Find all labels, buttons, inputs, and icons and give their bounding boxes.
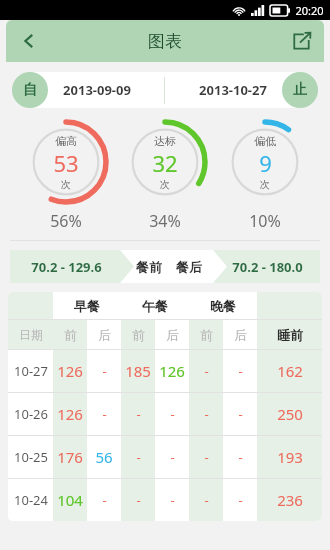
- staticText: -: [238, 448, 243, 466]
- staticText: 晚餐: [210, 298, 236, 314]
- button[interactable]: 10-25: [8, 436, 322, 478]
- staticText: 后: [166, 327, 179, 343]
- button[interactable]: 2013-10-27: [165, 72, 300, 108]
- staticText: -: [204, 405, 209, 423]
- button[interactable]: 餐前: [132, 259, 166, 275]
- staticText: 后: [98, 327, 111, 343]
- staticText: 次: [61, 178, 71, 191]
- staticText: 2013-10-27: [199, 81, 267, 99]
- staticText: 后: [234, 327, 247, 343]
- staticText: 次: [260, 178, 270, 191]
- staticText: -: [204, 362, 209, 380]
- staticText: 午餐: [142, 298, 168, 314]
- staticText: 70.2 - 129.6: [31, 258, 102, 276]
- staticText: 10-27: [14, 362, 48, 380]
- staticText: 56%: [50, 210, 82, 232]
- staticText: -: [136, 405, 141, 423]
- staticText: 126: [57, 361, 83, 381]
- staticText: 早餐: [74, 298, 100, 314]
- staticText: 达标: [154, 134, 176, 148]
- staticText: 9: [259, 148, 272, 178]
- staticText: -: [238, 362, 243, 380]
- button[interactable]: 10-24: [8, 479, 322, 521]
- staticText: 偏低: [254, 134, 276, 148]
- button[interactable]: 2013-09-09: [30, 72, 164, 108]
- staticText: 32: [152, 148, 178, 178]
- staticText: -: [204, 491, 209, 509]
- button[interactable]: Back: [6, 20, 52, 62]
- staticText: 10-26: [14, 405, 48, 423]
- staticText: -: [170, 405, 175, 423]
- staticText: 图表: [148, 31, 182, 52]
- staticText: 34%: [149, 210, 181, 232]
- staticText: -: [136, 448, 141, 466]
- button[interactable]: 餐后: [172, 259, 206, 275]
- staticText: 次: [160, 178, 170, 191]
- staticText: 睡前: [277, 327, 303, 343]
- button[interactable]: 10-26: [8, 393, 322, 435]
- staticText: 10%: [249, 210, 281, 232]
- staticText: 前: [200, 327, 213, 343]
- staticText: 104: [57, 490, 83, 510]
- staticText: 10-24: [14, 491, 48, 509]
- staticText: 250: [277, 404, 303, 424]
- staticText: 日期: [19, 327, 43, 342]
- staticText: 53: [53, 148, 79, 178]
- staticText: -: [238, 491, 243, 509]
- staticText: 236: [277, 490, 303, 510]
- staticText: -: [102, 491, 107, 509]
- staticText: 前: [132, 327, 145, 343]
- staticText: 70.2 - 180.0: [232, 258, 303, 276]
- staticText: -: [102, 362, 107, 380]
- button[interactable]: 70.2 - 180.0: [215, 250, 320, 283]
- staticText: 185: [125, 361, 151, 381]
- staticText: 自: [23, 81, 37, 99]
- button[interactable]: 10-27: [8, 350, 322, 392]
- staticText: -: [170, 448, 175, 466]
- staticText: 偏高: [55, 134, 77, 148]
- staticText: 126: [57, 404, 83, 424]
- staticText: 2013-09-09: [63, 81, 131, 99]
- button[interactable]: 偏高: [24, 120, 108, 204]
- staticText: 20:20: [295, 3, 324, 18]
- button[interactable]: 自: [12, 72, 48, 108]
- staticText: -: [136, 491, 141, 509]
- staticText: -: [170, 491, 175, 509]
- button[interactable]: 止: [282, 72, 318, 108]
- staticText: 10-25: [14, 448, 48, 466]
- staticText: 止: [293, 81, 307, 99]
- staticText: 餐前: [136, 259, 162, 275]
- staticText: 162: [277, 361, 303, 381]
- button[interactable]: 偏低: [223, 120, 307, 204]
- staticText: 前: [64, 327, 77, 343]
- staticText: 193: [277, 447, 303, 467]
- staticText: 176: [57, 447, 83, 467]
- staticText: -: [204, 448, 209, 466]
- staticText: 餐后: [176, 259, 202, 275]
- staticText: 126: [159, 361, 185, 381]
- button[interactable]: Share: [278, 20, 324, 62]
- staticText: 56: [95, 447, 113, 467]
- button[interactable]: 达标: [123, 120, 207, 204]
- staticText: -: [238, 405, 243, 423]
- staticText: -: [102, 405, 107, 423]
- button[interactable]: 70.2 - 129.6: [10, 250, 122, 283]
